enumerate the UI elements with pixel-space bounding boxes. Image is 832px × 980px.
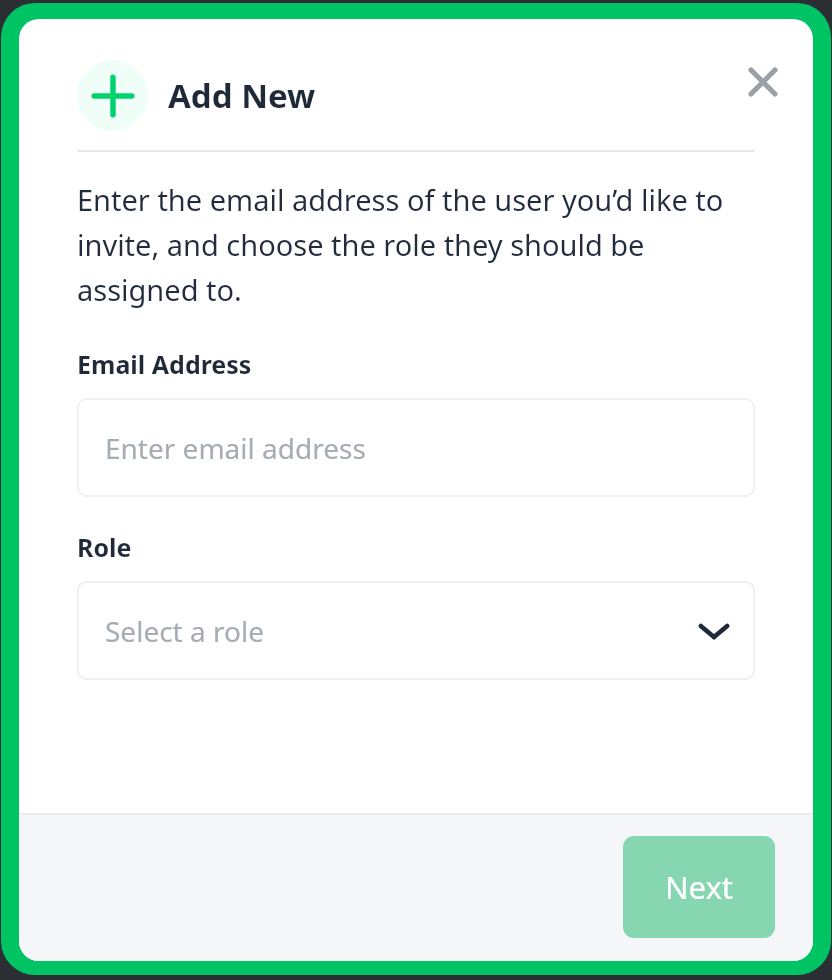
button[interactable]: Next	[623, 836, 775, 938]
staticText: Select a role	[105, 612, 264, 650]
staticText: Email Address	[77, 347, 252, 381]
other: Expand role options	[697, 614, 731, 648]
staticText: Add New	[168, 73, 316, 118]
staticText: Enter email address	[105, 429, 366, 467]
staticText: Enter the email address of the user you’…	[77, 180, 755, 310]
staticText: Role	[77, 530, 132, 564]
staticText: Next	[665, 866, 734, 908]
button[interactable]: Enter email address	[77, 398, 755, 497]
button[interactable]: Close	[735, 54, 791, 110]
button[interactable]: Select a role	[77, 581, 755, 680]
